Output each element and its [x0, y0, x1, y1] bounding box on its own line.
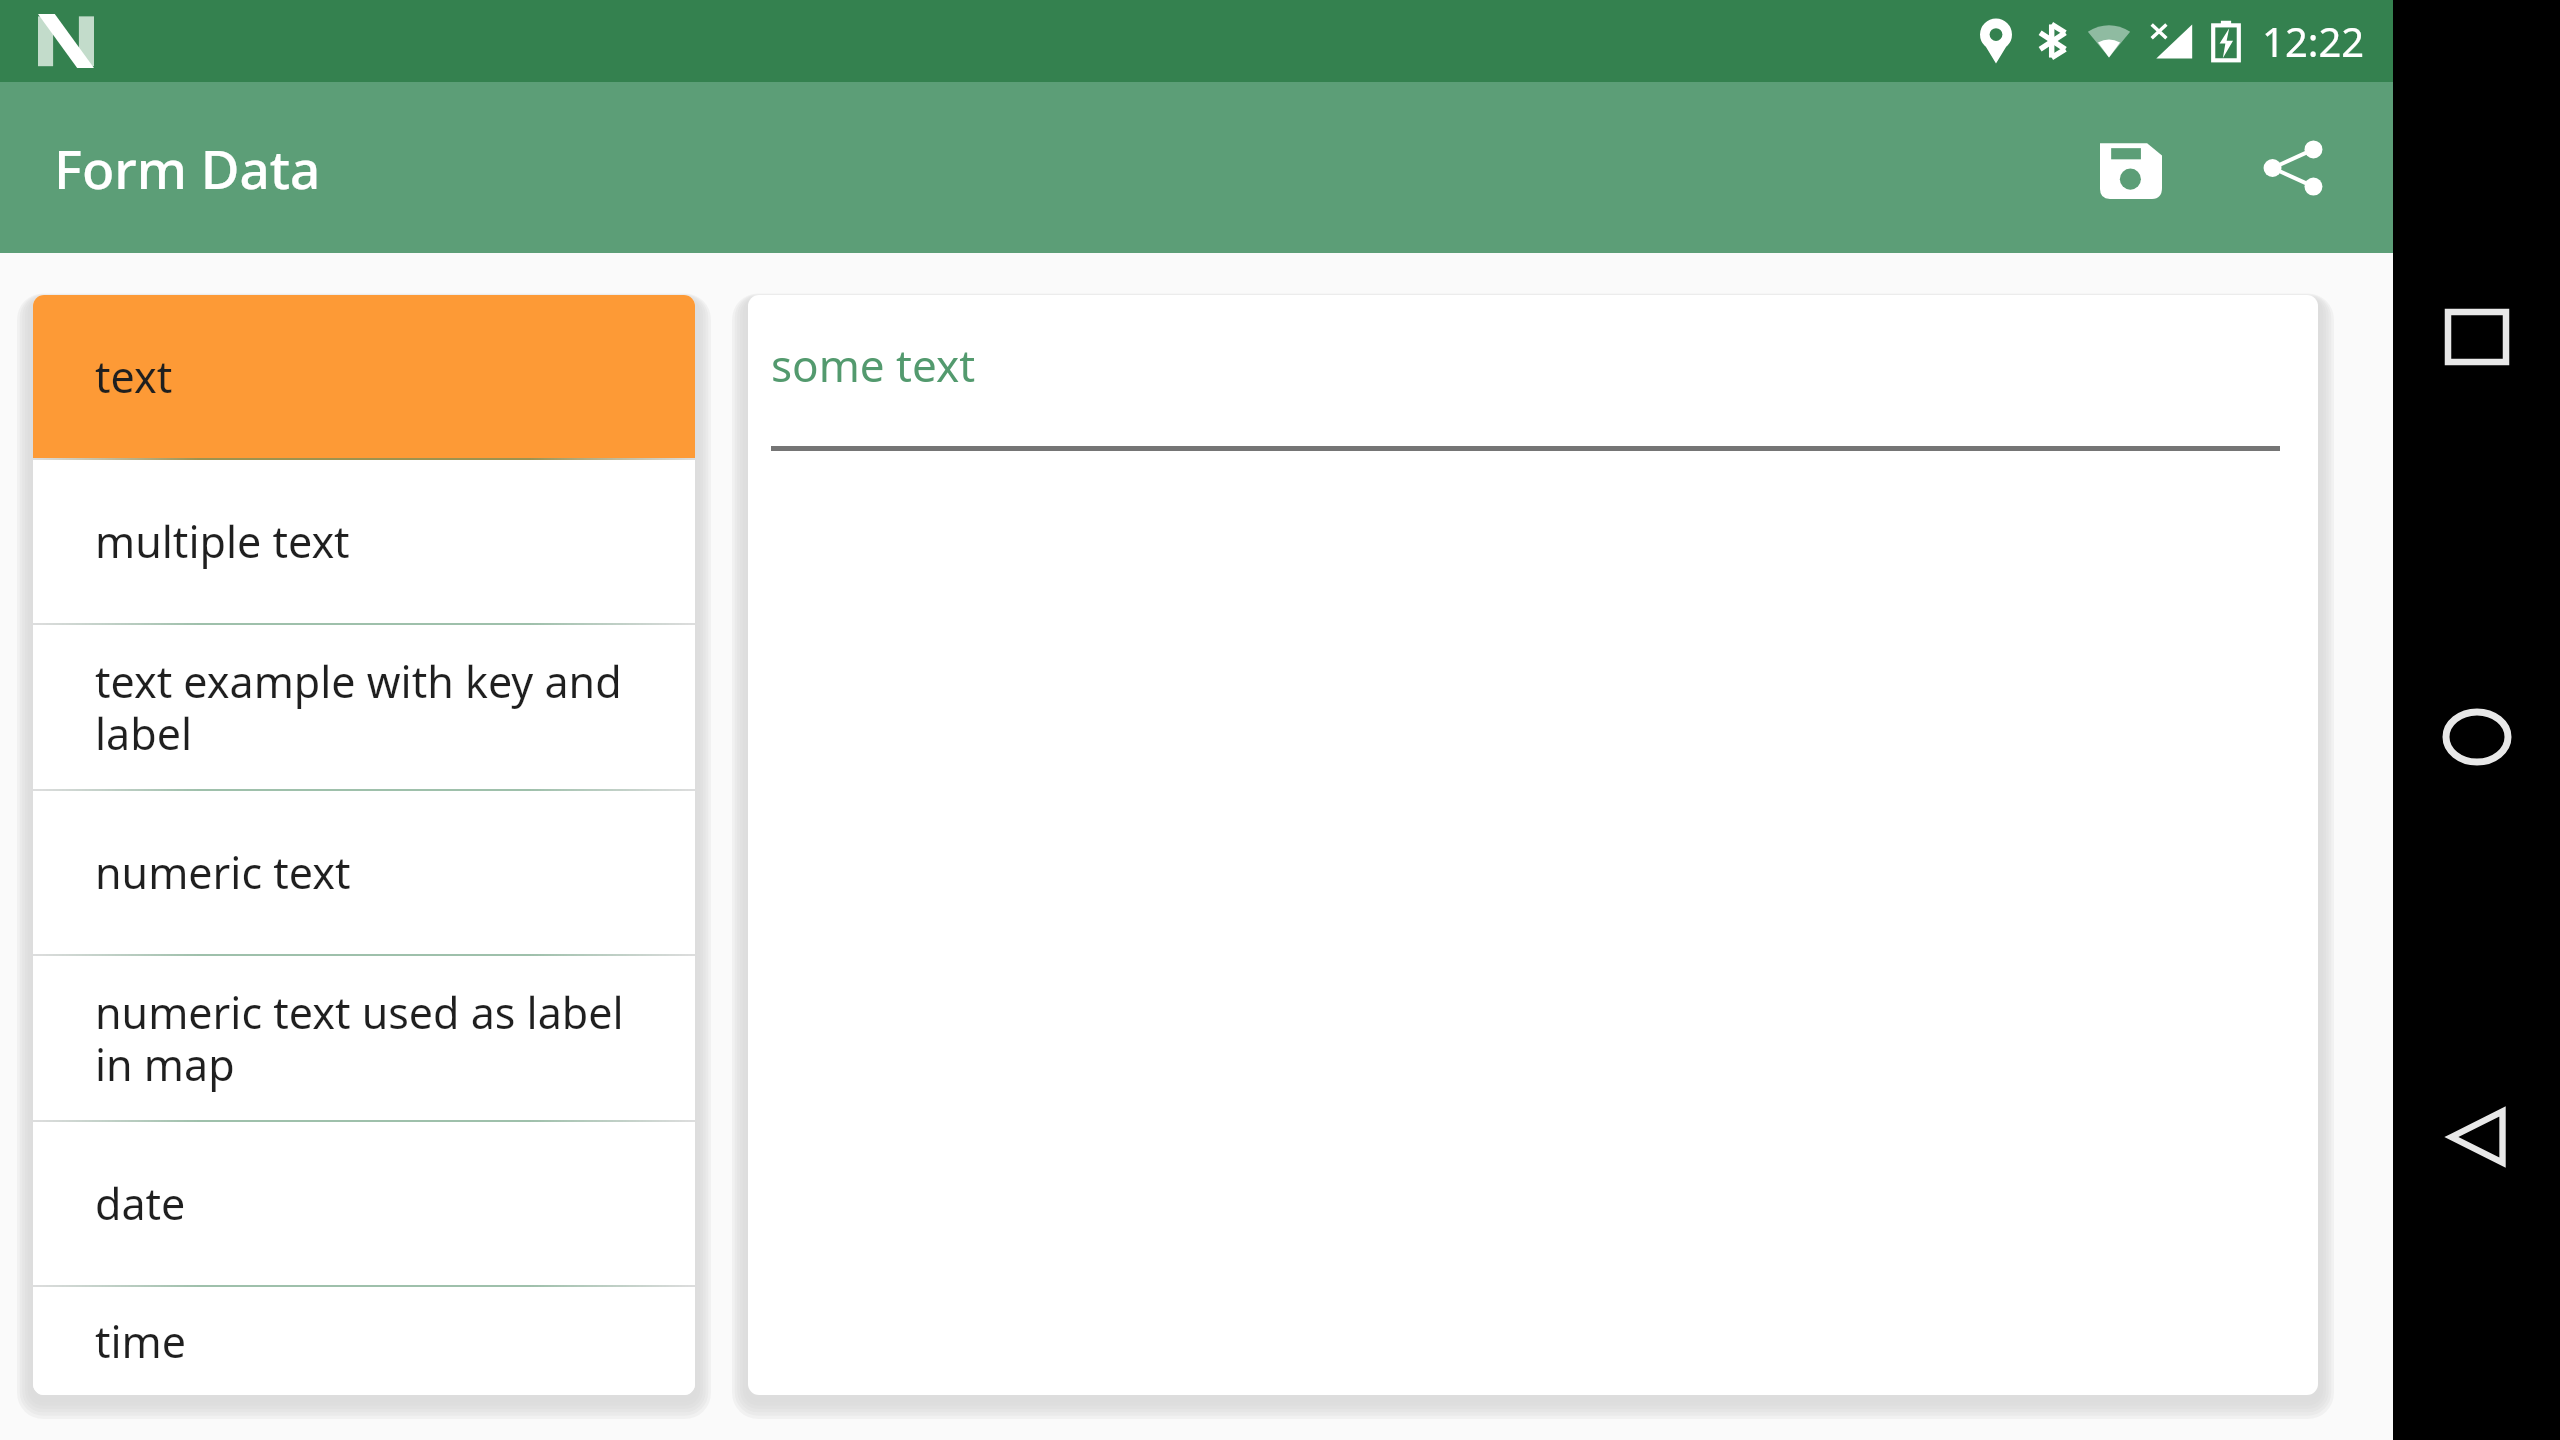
- staticText: numeric text used as label in map: [95, 983, 665, 1093]
- button[interactable]: date: [33, 1122, 695, 1287]
- button[interactable]: multiple text: [33, 460, 695, 625]
- button[interactable]: text example with key and label: [33, 625, 695, 791]
- staticText: numeric text: [95, 843, 351, 902]
- button[interactable]: text: [33, 295, 695, 460]
- staticText: 12:22: [2262, 14, 2365, 68]
- button[interactable]: Recent apps: [2393, 262, 2560, 412]
- button[interactable]: Back: [2393, 1062, 2560, 1212]
- button[interactable]: Save: [2071, 108, 2191, 228]
- button[interactable]: time: [33, 1287, 695, 1395]
- staticText: Form Data: [54, 132, 321, 204]
- button[interactable]: Home: [2393, 662, 2560, 812]
- staticText: text: [95, 347, 173, 406]
- staticText: date: [95, 1174, 186, 1233]
- button[interactable]: Share: [2233, 108, 2353, 228]
- button[interactable]: numeric text used as label in map: [33, 956, 695, 1122]
- staticText: multiple text: [95, 512, 350, 571]
- button[interactable]: numeric text: [33, 791, 695, 956]
- staticText: some text: [771, 335, 976, 395]
- staticText: text example with key and label: [95, 652, 665, 762]
- staticText: time: [95, 1312, 187, 1371]
